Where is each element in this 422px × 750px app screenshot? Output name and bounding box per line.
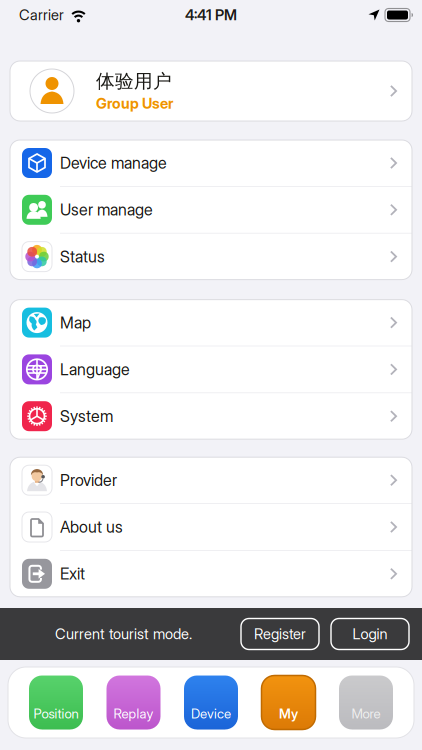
staticText: About us — [60, 518, 123, 536]
staticText: Group User — [96, 95, 173, 112]
button[interactable]: Replay — [106, 675, 160, 729]
button[interactable]: Position — [29, 675, 83, 729]
staticText: Login — [352, 625, 387, 643]
staticText: Map — [60, 313, 91, 332]
staticText: User manage — [60, 200, 153, 219]
button[interactable]: Device — [184, 675, 238, 729]
button[interactable]: Register — [241, 618, 319, 649]
staticText: Provider — [60, 471, 117, 490]
staticText: Exit — [60, 564, 85, 583]
button[interactable]: About us — [10, 504, 412, 550]
staticText: Device — [191, 706, 231, 721]
button[interactable]: Provider — [10, 457, 412, 503]
button[interactable]: Map — [10, 300, 412, 346]
staticText: Register — [254, 625, 306, 643]
staticText: 体验用户 — [96, 70, 172, 93]
button[interactable]: Device manage — [10, 140, 412, 186]
button[interactable]: More — [339, 675, 393, 729]
button[interactable]: Language — [10, 346, 412, 392]
staticText: Replay — [113, 706, 153, 721]
button[interactable]: Status — [10, 234, 412, 280]
button[interactable]: System — [10, 393, 412, 439]
staticText: My — [279, 706, 298, 721]
staticText: Current tourist mode. — [55, 625, 192, 643]
staticText: Language — [60, 360, 130, 379]
button[interactable]: My — [261, 675, 315, 729]
staticText: Status — [60, 247, 105, 266]
staticText: Position — [33, 706, 78, 721]
staticText: Device manage — [60, 154, 167, 172]
staticText: 4:41 PM — [185, 6, 237, 24]
button[interactable]: Login — [331, 618, 409, 649]
button[interactable]: User manage — [10, 187, 412, 233]
staticText: Carrier — [19, 6, 64, 24]
staticText: System — [60, 407, 113, 426]
staticText: More — [351, 706, 380, 721]
button[interactable]: 体验用户 — [10, 61, 412, 121]
button[interactable]: Exit — [10, 551, 412, 597]
